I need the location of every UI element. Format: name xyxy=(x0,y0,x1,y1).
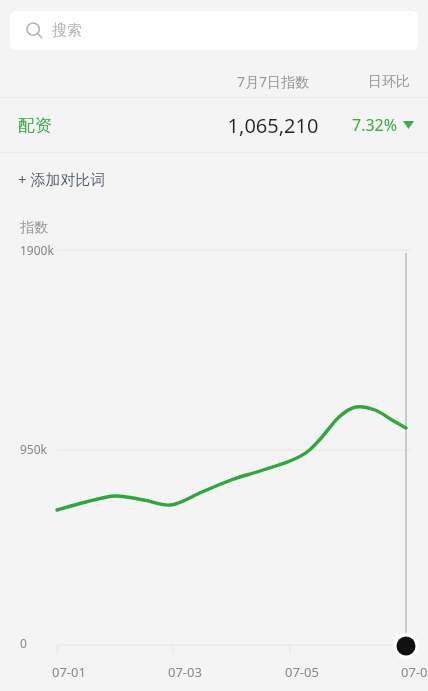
button[interactable]: 搜索 xyxy=(10,11,418,50)
staticText: 07-03 xyxy=(168,663,202,681)
staticText: 07-05 xyxy=(285,663,319,681)
staticText: 指数 xyxy=(20,219,48,237)
staticText: 1900k xyxy=(20,242,54,258)
staticText: + 添加对比词 xyxy=(18,169,106,189)
staticText: 0 xyxy=(20,635,27,651)
staticText: 07-01 xyxy=(52,663,86,681)
button[interactable]: + 添加对比词 xyxy=(12,164,112,194)
staticText: 950k xyxy=(20,441,48,457)
staticText: 日环比 xyxy=(368,73,410,91)
staticText: 1,065,210 xyxy=(208,112,338,139)
staticText: 7.32% xyxy=(352,114,398,136)
staticText: 配资 xyxy=(18,115,52,136)
staticText: 搜索 xyxy=(52,21,82,40)
staticText: 07-07 xyxy=(401,663,428,681)
staticText: 7月7日指数 xyxy=(208,72,338,91)
button[interactable]: 配资 xyxy=(0,98,428,152)
